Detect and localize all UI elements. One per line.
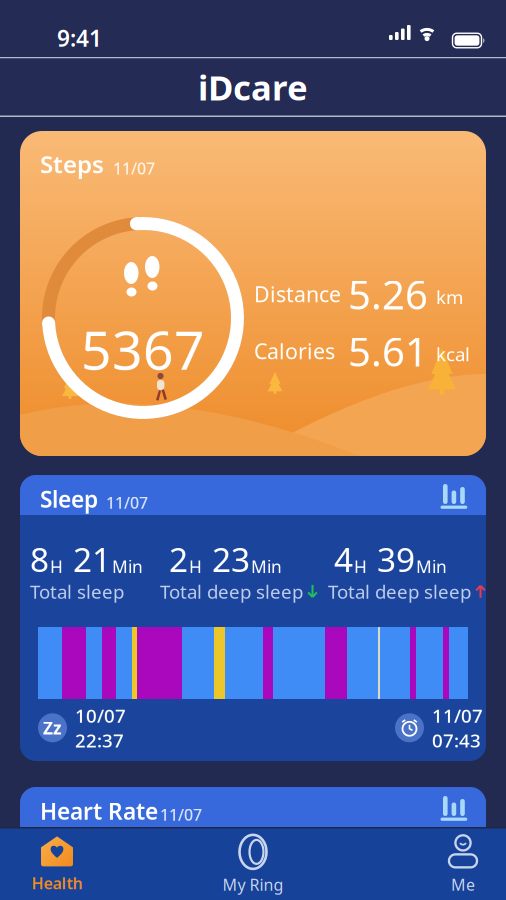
staticText: Distance (254, 280, 341, 308)
staticText: Heart Rate (40, 796, 158, 826)
button[interactable]: Me (423, 827, 503, 900)
staticText: 2 (169, 537, 188, 581)
staticText: 10/07 (75, 703, 126, 728)
staticText: H (50, 555, 63, 578)
staticText: Me (451, 874, 475, 895)
staticText: kcal (436, 342, 470, 366)
staticText: 23 (203, 537, 250, 581)
staticText: 5.26 (348, 267, 428, 320)
staticText: 21 (64, 537, 111, 581)
staticText: Min (416, 555, 447, 578)
staticText: 11/07 (160, 804, 202, 825)
staticText: 9:41 (57, 23, 102, 53)
staticText: 8 (30, 537, 49, 581)
staticText: Min (112, 555, 143, 578)
staticText: Zz (43, 716, 62, 739)
staticText: 5.61 (348, 324, 428, 377)
staticText: Total deep sleep (328, 579, 471, 604)
staticText: My Ring (222, 874, 283, 895)
staticText: 11/07 (113, 158, 155, 179)
staticText: Total deep sleep (160, 579, 303, 604)
staticText: 07:43 (432, 728, 481, 753)
staticText: 5367 (81, 314, 205, 384)
staticText: 39 (368, 537, 415, 581)
button[interactable]: Health (17, 827, 97, 900)
button[interactable]: Heart Rate (20, 787, 486, 900)
button[interactable]: My Ring (203, 827, 303, 900)
staticText: 11/07 (432, 703, 483, 728)
staticText: Sleep (40, 484, 98, 514)
staticText: km (436, 285, 463, 309)
staticText: 4 (334, 537, 353, 581)
staticText: Min (251, 555, 282, 578)
staticText: Health (31, 872, 82, 894)
staticText: H (189, 555, 202, 578)
staticText: Calories (254, 337, 335, 365)
button[interactable]: Sleep (20, 475, 486, 761)
staticText: iDcare (198, 64, 308, 110)
staticText: Total sleep (30, 579, 124, 604)
button[interactable]: Steps (20, 131, 486, 456)
staticText: H (354, 555, 367, 578)
staticText: Steps (40, 148, 104, 180)
staticText: 22:37 (75, 728, 124, 753)
staticText: 11/07 (106, 492, 148, 513)
